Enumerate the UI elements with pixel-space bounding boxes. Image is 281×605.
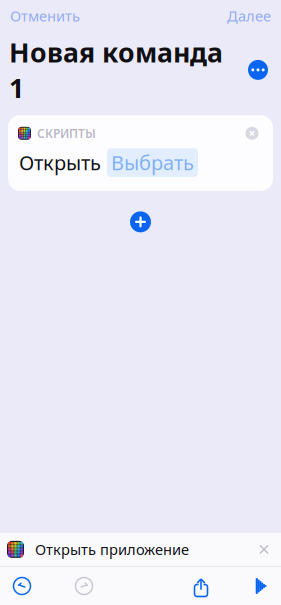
staticText: Выбрать <box>111 149 194 176</box>
staticText: Открыть приложение <box>35 540 189 559</box>
button[interactable]: Отменить <box>2 567 42 605</box>
button[interactable]: Добавить действие <box>120 205 160 239</box>
staticText: Отменить <box>10 6 80 25</box>
button[interactable]: Удалить действие <box>241 122 263 144</box>
button[interactable]: Повторить <box>64 567 104 605</box>
staticText: СКРИПТЫ <box>37 125 96 141</box>
button[interactable]: Закрыть подсказку <box>247 532 281 566</box>
staticText: Далее <box>227 6 271 25</box>
staticText: Новая команда 1 <box>9 34 223 105</box>
button[interactable]: Запустить <box>243 567 279 605</box>
button[interactable]: Далее <box>219 2 279 29</box>
button[interactable]: Выбрать <box>107 148 198 177</box>
button[interactable]: Поделиться <box>181 567 221 605</box>
staticText: Открыть <box>19 149 101 176</box>
button[interactable]: Отменить <box>2 2 88 29</box>
button[interactable]: Ещё <box>244 56 272 84</box>
